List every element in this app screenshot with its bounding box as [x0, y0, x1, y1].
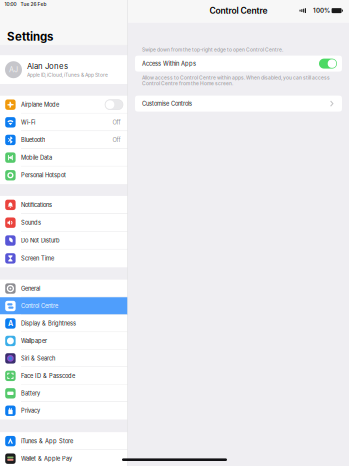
- button[interactable]: Airplane Mode: [0, 96, 127, 113]
- staticText: Sounds: [21, 219, 41, 226]
- button[interactable]: Screen Time: [0, 250, 127, 267]
- button[interactable]: Wallpaper: [0, 332, 127, 350]
- staticText: Customise Controls: [142, 100, 192, 107]
- staticText: Swipe down from the top-right edge to op…: [142, 47, 283, 53]
- staticText: Control Centre: [209, 5, 267, 16]
- staticText: Display & Brightness: [21, 320, 76, 327]
- button[interactable]: Face ID & Passcode: [0, 367, 127, 385]
- staticText: Tue 26 Feb: [20, 1, 46, 7]
- staticText: Access Within Apps: [142, 60, 196, 67]
- button[interactable]: Control Centre: [0, 297, 127, 315]
- staticText: A: [8, 319, 13, 328]
- staticText: General: [21, 285, 40, 292]
- staticText: Notifications: [21, 201, 52, 208]
- button[interactable]: A: [0, 315, 127, 332]
- button[interactable]: Wallet & Apple Pay: [0, 450, 127, 466]
- staticText: Settings: [7, 29, 53, 43]
- staticText: Screen Time: [21, 255, 54, 262]
- staticText: Wallet & Apple Pay: [21, 455, 72, 462]
- button[interactable]: Do Not Disturb: [0, 232, 127, 249]
- button[interactable]: General: [0, 280, 127, 297]
- button[interactable]: Mobile Data: [0, 149, 127, 166]
- button[interactable]: Personal Hotspot: [0, 166, 127, 184]
- button[interactable]: Privacy: [0, 402, 127, 419]
- button[interactable]: AJ: [0, 55, 127, 84]
- button[interactable]: Customise Controls: [135, 96, 342, 112]
- button[interactable]: iTunes & App Store: [0, 432, 127, 450]
- staticText: AJ: [9, 65, 18, 74]
- staticText: Do Not Disturb: [21, 237, 60, 244]
- staticText: Battery: [21, 390, 40, 397]
- staticText: Personal Hotspot: [21, 172, 66, 179]
- staticText: Control Centre: [21, 302, 58, 309]
- staticText: Face ID & Passcode: [21, 372, 75, 379]
- button[interactable]: Wi-Fi: [0, 113, 127, 131]
- staticText: Off: [112, 136, 120, 143]
- staticText: Bluetooth: [21, 136, 45, 143]
- button[interactable]: Bluetooth: [0, 131, 127, 149]
- staticText: Allow access to Control Centre within ap…: [142, 75, 330, 86]
- button[interactable]: Notifications: [0, 196, 127, 214]
- staticText: Wi-Fi: [21, 119, 35, 126]
- staticText: 100%: [313, 7, 330, 14]
- staticText: Wallpaper: [21, 337, 47, 344]
- staticText: iTunes & App Store: [21, 438, 73, 445]
- button[interactable]: Siri & Search: [0, 350, 127, 367]
- staticText: Mobile Data: [21, 154, 52, 161]
- staticText: Apple ID, iCloud, iTunes & App Store: [27, 72, 108, 78]
- staticText: Privacy: [21, 407, 40, 414]
- button[interactable]: Sounds: [0, 214, 127, 231]
- staticText: Off: [112, 119, 120, 126]
- staticText: Airplane Mode: [21, 101, 59, 108]
- staticText: Alan Jones: [27, 61, 68, 71]
- button[interactable]: Access Within Apps: [135, 56, 342, 72]
- button[interactable]: Battery: [0, 385, 127, 402]
- staticText: Siri & Search: [21, 355, 55, 362]
- staticText: 10:00: [4, 1, 16, 7]
